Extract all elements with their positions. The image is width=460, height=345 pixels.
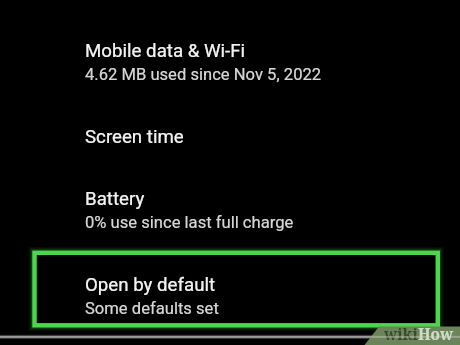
staticText: Mobile data & Wi-Fi bbox=[85, 40, 246, 62]
button[interactable]: Open by default bbox=[0, 252, 460, 324]
staticText: Battery bbox=[85, 188, 145, 210]
staticText: 0% use since last full charge bbox=[85, 213, 294, 232]
staticText: Some defaults set bbox=[85, 299, 219, 318]
staticText: 4.62 MB used since Nov 5, 2022 bbox=[85, 65, 322, 84]
button[interactable]: Battery bbox=[0, 172, 460, 234]
staticText: wiki bbox=[384, 324, 418, 345]
staticText: Open by default bbox=[85, 274, 216, 296]
button[interactable]: Mobile data & Wi-Fi bbox=[0, 24, 460, 86]
button[interactable]: Screen time bbox=[0, 110, 460, 162]
staticText: Screen time bbox=[85, 126, 184, 148]
staticText: How bbox=[418, 324, 454, 345]
